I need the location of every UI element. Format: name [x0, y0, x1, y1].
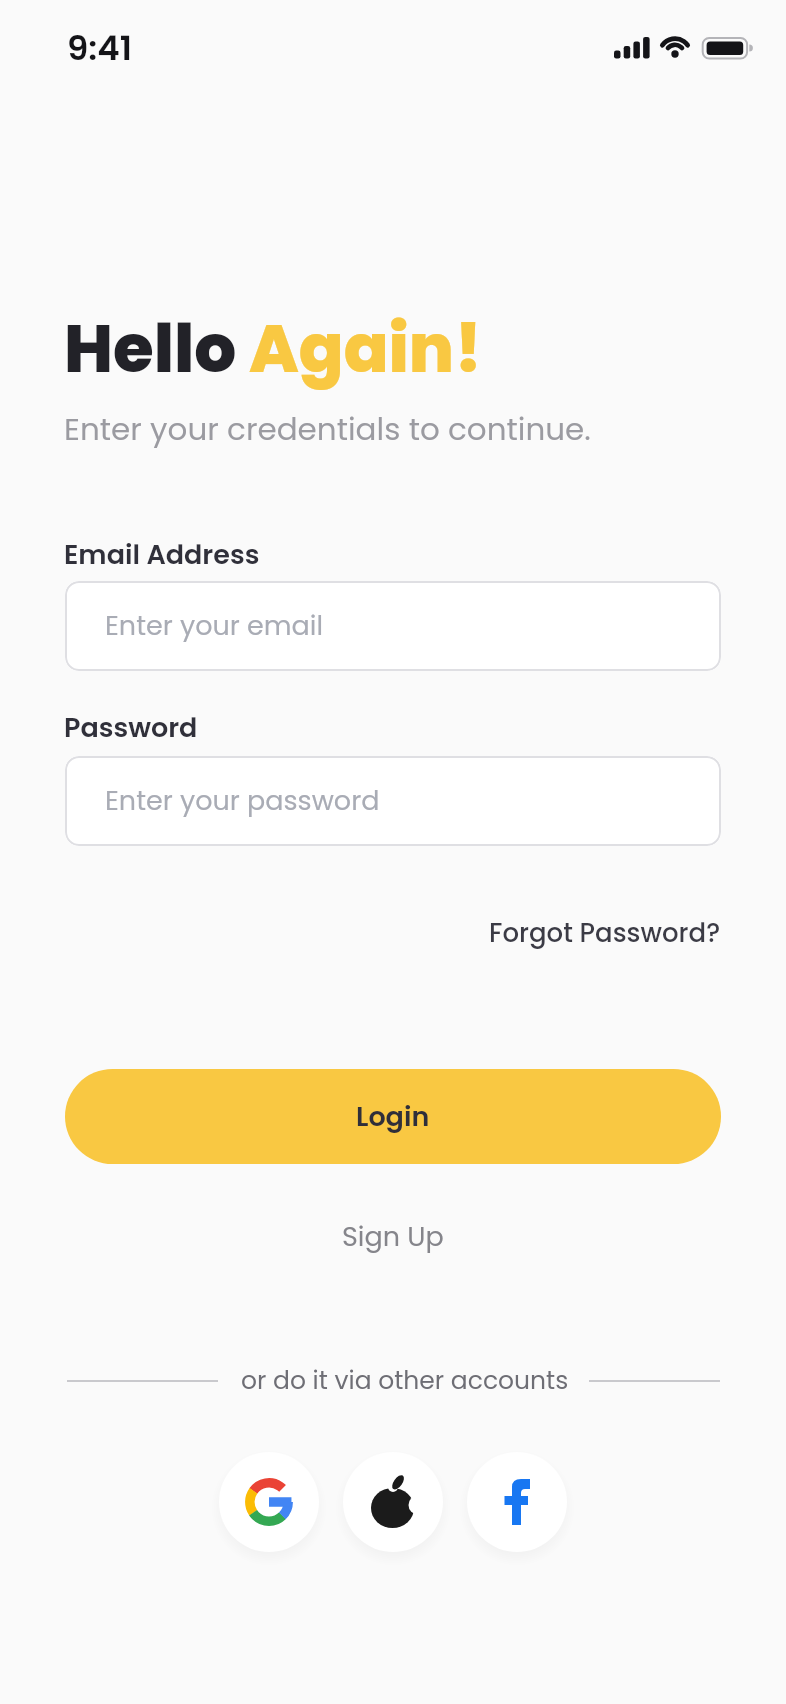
- button[interactable]: Enter your password: [65, 756, 721, 846]
- button[interactable]: Sign Up: [342, 1218, 444, 1256]
- staticText: Password: [64, 709, 198, 747]
- button[interactable]: Enter your email: [65, 581, 721, 671]
- button[interactable]: Forgot Password?: [489, 915, 721, 951]
- button[interactable]: [467, 1452, 567, 1552]
- staticText: Email Address: [64, 536, 260, 574]
- button[interactable]: Login: [65, 1069, 721, 1164]
- staticText: Hello Again!: [64, 303, 483, 395]
- button[interactable]: [219, 1452, 319, 1552]
- staticText: 9:41: [67, 24, 133, 72]
- staticText: or do it via other accounts: [241, 1363, 569, 1398]
- staticText: Enter your credentials to continue.: [64, 407, 591, 450]
- staticText: Sign Up: [342, 1218, 444, 1256]
- staticText: Enter your password: [105, 782, 380, 820]
- staticText: Login: [356, 1098, 430, 1136]
- staticText: Enter your email: [105, 607, 324, 645]
- button[interactable]: [343, 1452, 443, 1552]
- staticText: Forgot Password?: [489, 915, 721, 951]
